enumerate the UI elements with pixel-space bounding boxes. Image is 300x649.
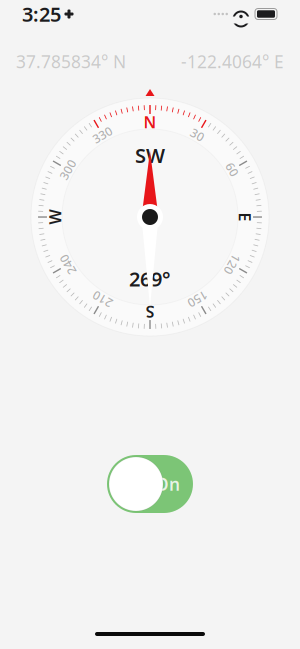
staticText: N bbox=[143, 111, 156, 133]
staticText: 37.785834° N bbox=[16, 50, 126, 73]
staticText: W bbox=[142, 111, 157, 133]
staticText: 300 bbox=[139, 114, 160, 130]
staticText: S bbox=[145, 111, 154, 133]
staticText: 269° bbox=[129, 265, 171, 292]
staticText: 3:25 bbox=[22, 1, 61, 27]
staticText: E bbox=[145, 111, 154, 133]
button[interactable]: True North, On bbox=[107, 455, 193, 513]
staticText: 120 bbox=[139, 114, 160, 130]
staticText: 60 bbox=[143, 114, 157, 130]
staticText: 330 bbox=[139, 114, 160, 130]
staticText: -122.4064° E bbox=[181, 50, 284, 73]
staticText: 210 bbox=[139, 114, 160, 130]
staticText: SW bbox=[135, 142, 165, 169]
staticText: 30 bbox=[143, 114, 157, 130]
staticText: On bbox=[155, 472, 180, 495]
staticText: 240 bbox=[139, 114, 160, 130]
staticText: 150 bbox=[139, 114, 160, 130]
